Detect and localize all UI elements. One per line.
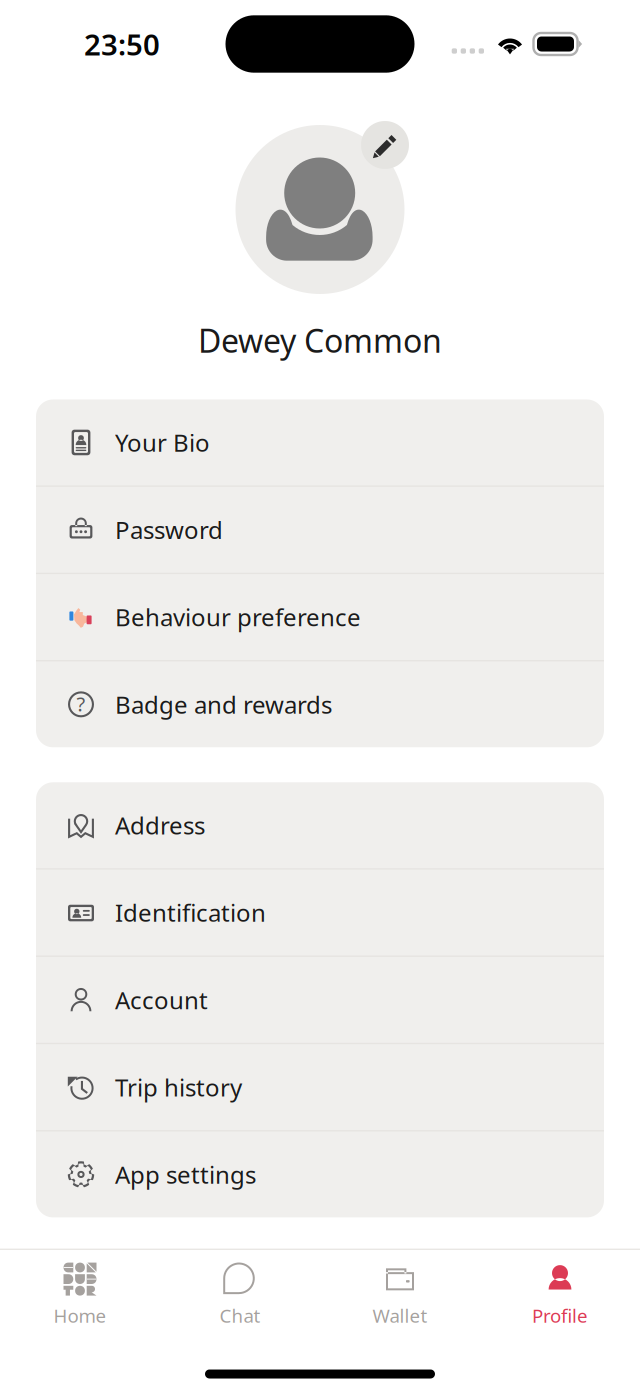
staticText: Wallet [372, 1303, 427, 1328]
staticText: 23:50 [84, 24, 160, 63]
staticText: Password [115, 514, 223, 546]
button[interactable]: Profile [480, 1247, 640, 1343]
staticText: Account [115, 984, 208, 1016]
button[interactable]: Address [36, 782, 604, 868]
staticText: Your Bio [115, 426, 210, 458]
button[interactable]: Identification [36, 870, 604, 955]
staticText: Dewey Common [198, 319, 442, 361]
staticText: Behaviour preference [115, 601, 361, 633]
staticText: Address [115, 809, 205, 841]
staticText: Badge and rewards [115, 688, 332, 720]
button[interactable]: Behaviour preference [36, 574, 604, 660]
staticText: Chat [219, 1303, 260, 1328]
staticText: App settings [115, 1158, 256, 1190]
button[interactable]: Edit profile photo [361, 121, 409, 169]
staticText: Home [53, 1303, 106, 1328]
button[interactable]: App settings [36, 1131, 604, 1217]
button[interactable]: Account [36, 957, 604, 1043]
staticText: Profile [532, 1303, 588, 1328]
button[interactable]: Home [0, 1247, 160, 1343]
staticText: ? [76, 691, 85, 717]
staticText: Identification [115, 897, 266, 928]
button[interactable]: Chat [160, 1247, 320, 1343]
button[interactable]: Wallet [320, 1247, 480, 1343]
button[interactable]: Password [36, 487, 604, 573]
button[interactable]: Trip history [36, 1044, 604, 1130]
button[interactable]: Your Bio [36, 399, 604, 485]
button[interactable]: ? [36, 661, 604, 747]
staticText: Trip history [115, 1071, 242, 1103]
